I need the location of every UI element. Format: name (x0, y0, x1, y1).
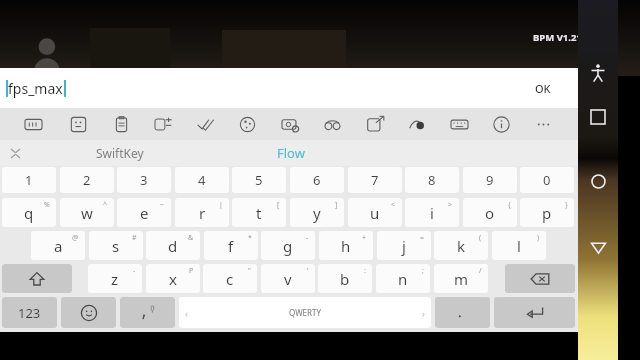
staticText: w (81, 203, 93, 223)
staticText: r (199, 203, 206, 223)
staticText: OK (535, 81, 551, 96)
button[interactable]: 3 (117, 167, 171, 193)
staticText: ; (422, 266, 424, 276)
button[interactable]: GIF (17, 108, 49, 140)
button[interactable]: l (492, 231, 546, 260)
button[interactable]: Emoji (61, 297, 116, 328)
button[interactable]: y (290, 198, 344, 227)
button[interactable]: f (204, 231, 258, 260)
button[interactable]: Incognito (316, 108, 348, 140)
button[interactable]: j (377, 231, 431, 260)
staticText: 1 (25, 171, 33, 189)
button[interactable]: More (527, 108, 559, 140)
button[interactable]: Enter (494, 297, 575, 328)
button[interactable]: 123 (2, 297, 57, 328)
button[interactable]: Recent apps (578, 100, 618, 134)
button[interactable]: Flow (260, 140, 322, 166)
button[interactable]: Expand toolbar (3, 141, 27, 165)
button[interactable]: 0 (520, 167, 574, 193)
staticText: y (313, 203, 321, 223)
button[interactable]: u (348, 198, 402, 227)
button[interactable]: t (232, 198, 286, 227)
button[interactable]: Themes (231, 108, 263, 140)
button[interactable]: h (319, 231, 373, 260)
button[interactable]: c (203, 264, 257, 293)
staticText: › (422, 307, 425, 319)
button[interactable]: Accessibility (578, 56, 618, 90)
staticText: 5 (255, 171, 263, 189)
button[interactable]: r (175, 198, 229, 227)
button[interactable]: d (146, 231, 200, 260)
staticText: : (364, 266, 366, 276)
button[interactable]: i (405, 198, 459, 227)
button[interactable]: Translate (147, 108, 179, 140)
button[interactable]: Period (435, 297, 490, 328)
button[interactable]: b (318, 264, 372, 293)
button[interactable]: m (434, 264, 488, 293)
button[interactable]: Stickers (62, 108, 94, 140)
button[interactable]: n (376, 264, 430, 293)
button[interactable]: 8 (405, 167, 459, 193)
button[interactable]: Home (578, 164, 618, 198)
button[interactable]: e (117, 198, 171, 227)
button[interactable]: w (60, 198, 114, 227)
staticText: c (226, 269, 234, 289)
button[interactable]: 5 (232, 167, 286, 193)
staticText: ^ (103, 200, 108, 210)
button[interactable]: o (463, 198, 517, 227)
button[interactable]: 7 (348, 167, 402, 193)
button[interactable]: z (88, 264, 142, 293)
staticText: @ (72, 233, 79, 243)
button[interactable]: s (89, 231, 143, 260)
button[interactable]: Comma and voice input (120, 297, 175, 328)
button[interactable]: Share (359, 108, 391, 140)
button[interactable]: 9 (463, 167, 517, 193)
button[interactable]: Tasks (189, 108, 221, 140)
button[interactable]: Info (485, 108, 517, 140)
button[interactable]: Space (179, 297, 431, 328)
staticText: ~ (160, 200, 165, 210)
button[interactable]: k (434, 231, 488, 260)
staticText: 8 (428, 171, 436, 189)
button[interactable]: p (520, 198, 574, 227)
button[interactable]: Shift (2, 264, 72, 293)
staticText: [ (277, 200, 280, 210)
button[interactable]: v (261, 264, 315, 293)
staticText: x (169, 269, 177, 289)
staticText: s (112, 236, 120, 256)
staticText: fps_max (8, 79, 63, 98)
staticText: # (132, 233, 137, 243)
staticText: f (228, 236, 234, 256)
button[interactable]: Edit (401, 108, 433, 140)
button[interactable]: Backspace (505, 264, 575, 293)
staticText: & (188, 233, 194, 243)
staticText: 7 (371, 171, 379, 189)
button[interactable]: a (31, 231, 85, 260)
staticText: u (370, 203, 380, 223)
staticText: < (391, 200, 396, 210)
staticText: k (457, 236, 466, 256)
staticText: ) (537, 233, 540, 243)
staticText: t (256, 203, 262, 223)
staticText: z (111, 269, 119, 289)
button[interactable]: g (261, 231, 315, 260)
button[interactable]: Keyboard modes (443, 108, 475, 140)
staticText: p (542, 203, 552, 223)
button[interactable]: x (146, 264, 200, 293)
button[interactable]: 1 (2, 167, 56, 193)
button[interactable]: 2 (60, 167, 114, 193)
staticText: l (517, 236, 521, 256)
staticText: + (362, 233, 367, 243)
staticText: i (430, 203, 434, 223)
button[interactable]: q (2, 198, 56, 227)
button[interactable]: 6 (290, 167, 344, 193)
button[interactable]: Clipboard (105, 108, 137, 140)
staticText: g (283, 236, 293, 256)
button[interactable]: 4 (175, 167, 229, 193)
button[interactable]: SwiftKey (60, 140, 180, 166)
button[interactable]: Camera (274, 108, 306, 140)
button[interactable]: Back (578, 230, 618, 264)
staticText: % (44, 200, 50, 210)
staticText: 123 (18, 304, 41, 322)
button[interactable]: OK (508, 68, 578, 108)
